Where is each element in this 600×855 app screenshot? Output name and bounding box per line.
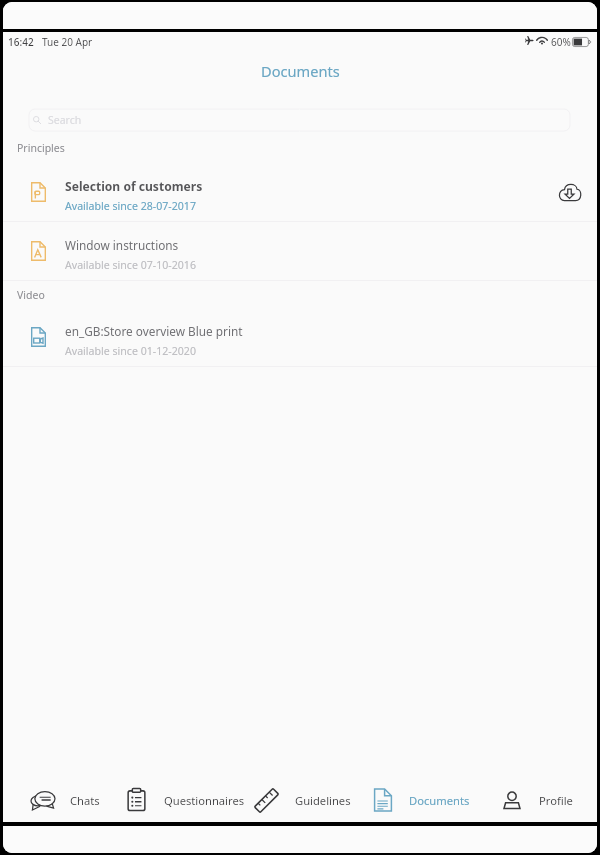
staticText: 16:42	[8, 35, 34, 49]
staticText: Guidelines	[295, 793, 351, 808]
staticText: Search	[48, 113, 82, 127]
staticText: Tue 20 Apr	[42, 35, 93, 49]
staticText: Chats	[70, 793, 100, 808]
button[interactable]: en_GB:Store overview Blue print	[3, 308, 597, 366]
staticText: Principles	[17, 141, 65, 155]
staticText: Window instructions	[65, 237, 179, 253]
staticText: en_GB:Store overview Blue print	[65, 323, 243, 339]
button[interactable]: Profile	[478, 774, 596, 822]
button[interactable]: Guidelines	[244, 774, 362, 822]
button[interactable]: Window instructions	[3, 222, 597, 280]
staticText: Documents	[409, 793, 470, 808]
staticText: Video	[17, 288, 45, 302]
staticText: Available since 01-12-2020	[65, 344, 196, 358]
staticText: Available since 07-10-2016	[65, 258, 196, 272]
button[interactable]: Documents	[362, 774, 480, 822]
button[interactable]: Questionnaires	[127, 774, 245, 822]
button[interactable]: Chats	[6, 774, 124, 822]
staticText: Profile	[539, 793, 573, 808]
staticText: Available since 28-07-2017	[65, 199, 196, 213]
staticText: Questionnaires	[164, 793, 245, 808]
staticText: Documents	[261, 61, 340, 81]
button[interactable]: Download	[554, 177, 584, 207]
staticText: 60%	[551, 35, 571, 49]
staticText: Selection of customers	[65, 178, 203, 194]
button[interactable]: Selection of customers	[3, 163, 597, 221]
